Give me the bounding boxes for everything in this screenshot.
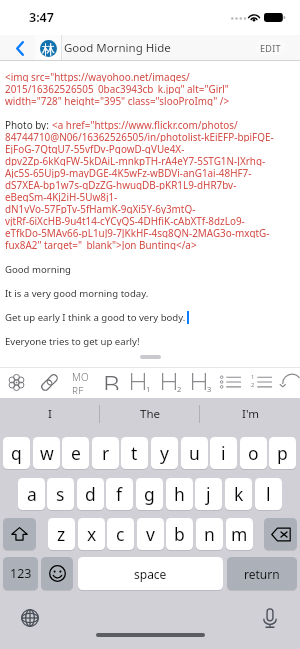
staticText: 1 bbox=[146, 384, 151, 394]
button[interactable]: Dictate bbox=[258, 606, 282, 630]
button[interactable]: k bbox=[225, 478, 252, 510]
staticText: width="728" height="395" class="slooProI… bbox=[5, 94, 230, 106]
button[interactable]: return bbox=[227, 557, 297, 590]
button[interactable]: m bbox=[226, 518, 253, 550]
button[interactable]: Back bbox=[11, 35, 29, 61]
button[interactable]: Good Morning Hide bbox=[61, 35, 251, 61]
button[interactable]: e bbox=[62, 437, 89, 469]
staticText: I bbox=[48, 406, 52, 422]
button[interactable]: z bbox=[48, 518, 75, 550]
staticText: h bbox=[174, 482, 185, 506]
staticText: x bbox=[87, 522, 97, 546]
staticText: c bbox=[116, 522, 125, 546]
button[interactable]: t bbox=[121, 437, 148, 469]
button[interactable]: i bbox=[210, 437, 237, 469]
button[interactable]: a bbox=[18, 478, 45, 510]
button[interactable]: Switch keyboard bbox=[18, 606, 42, 630]
staticText: Get up early I think a good to very body… bbox=[5, 311, 186, 324]
button[interactable]: u bbox=[181, 437, 208, 469]
staticText: Ajc5S-65Ujp9-mayDGE-4K5wFz-wBDVi-anG1ai-… bbox=[5, 166, 252, 178]
staticText: d bbox=[85, 482, 96, 506]
button[interactable]: Author avatar bbox=[35, 35, 61, 61]
staticText: i bbox=[221, 441, 226, 465]
staticText: f bbox=[116, 482, 123, 506]
button[interactable]: b bbox=[166, 518, 193, 550]
staticText: l bbox=[266, 482, 271, 506]
staticText: B bbox=[103, 366, 120, 390]
button[interactable]: v bbox=[137, 518, 164, 550]
staticText: w bbox=[40, 441, 54, 465]
button[interactable]: Text style bbox=[3, 370, 29, 394]
button[interactable]: The bbox=[100, 398, 200, 430]
staticText: u bbox=[189, 441, 200, 465]
button[interactable]: o bbox=[240, 437, 267, 469]
staticText: b bbox=[174, 522, 185, 546]
staticText: y bbox=[160, 441, 169, 465]
button[interactable]: Heading 2 bbox=[160, 370, 186, 394]
staticText: 2015/16362526505_0bac3943cb_k.jpg" alt="… bbox=[5, 82, 229, 94]
staticText: m bbox=[231, 522, 248, 546]
staticText: s bbox=[56, 482, 65, 506]
button[interactable]: c bbox=[107, 518, 134, 550]
button[interactable]: Heading 1 bbox=[129, 370, 155, 394]
button[interactable]: p bbox=[269, 437, 296, 469]
staticText: Everyone tries to get up early! bbox=[5, 335, 140, 348]
staticText: a bbox=[27, 482, 37, 506]
staticText: 84744710@N06/16362526505/in/photolist-kE… bbox=[5, 130, 274, 142]
button[interactable]: Numbered list bbox=[248, 370, 274, 394]
button[interactable]: l bbox=[255, 478, 282, 510]
staticText: Photo by: bbox=[5, 118, 52, 130]
staticText: eTfkDo-5MAv66-pL1uJ9-7JKkHF-4sg8QN-2MAG3… bbox=[5, 226, 270, 238]
button[interactable]: Bold bbox=[98, 370, 124, 394]
button[interactable]: Undo bbox=[279, 370, 300, 394]
button[interactable]: s bbox=[47, 478, 74, 510]
staticText: k bbox=[234, 482, 244, 506]
button[interactable]: j bbox=[195, 478, 222, 510]
staticText: EDIT bbox=[260, 42, 281, 54]
staticText: n bbox=[204, 522, 215, 546]
button[interactable]: w bbox=[33, 437, 60, 469]
staticText: e bbox=[71, 441, 81, 465]
button[interactable]: n bbox=[196, 518, 223, 550]
button[interactable]: q bbox=[3, 437, 30, 469]
button[interactable]: Shift bbox=[3, 518, 36, 550]
button[interactable]: 123 bbox=[3, 557, 38, 590]
staticText: 3 bbox=[207, 384, 212, 394]
staticText: q bbox=[11, 441, 22, 465]
button[interactable]: y bbox=[151, 437, 178, 469]
button[interactable]: Bulleted list bbox=[217, 370, 243, 394]
staticText: p bbox=[277, 441, 288, 465]
button[interactable]: Insert link bbox=[36, 370, 62, 394]
button[interactable]: x bbox=[78, 518, 105, 550]
staticText: fux8A2" target="_blank">Jon Bunting</a> bbox=[5, 238, 197, 250]
button[interactable]: EDIT bbox=[255, 40, 286, 55]
staticText: j bbox=[206, 482, 211, 506]
button[interactable]: I'm bbox=[200, 398, 300, 430]
button[interactable]: r bbox=[92, 437, 119, 469]
staticText: vjtRf-6iXcHB-9u4t14-cYCyQS-4DHfiK-cAbXTf… bbox=[5, 214, 245, 226]
staticText: t bbox=[131, 441, 138, 465]
button[interactable]: h bbox=[166, 478, 193, 510]
staticText: 2 bbox=[177, 384, 182, 394]
staticText: r bbox=[102, 441, 110, 465]
staticText: MO bbox=[72, 370, 89, 384]
button[interactable]: space bbox=[78, 557, 223, 590]
staticText: g bbox=[144, 482, 155, 506]
button[interactable]: g bbox=[136, 478, 163, 510]
button[interactable]: Heading 3 bbox=[190, 370, 216, 394]
button[interactable]: d bbox=[77, 478, 104, 510]
staticText: return bbox=[244, 566, 280, 582]
staticText: Good morning bbox=[5, 263, 71, 276]
staticText: 1 bbox=[251, 373, 255, 381]
staticText: 2 bbox=[251, 381, 255, 389]
staticText: I'm bbox=[242, 406, 259, 422]
button[interactable]: More bbox=[67, 370, 93, 394]
staticText: dN1vVo-57FpTv-5fHamK-9qXi5Y-6y3mtQ- bbox=[5, 202, 196, 214]
button[interactable]: I bbox=[0, 398, 100, 430]
button[interactable]: f bbox=[106, 478, 133, 510]
button[interactable]: Backspace bbox=[264, 518, 297, 550]
staticText: dpv2Zp-6kKgFW-5kDAiL-mnkpTH-rA4eY7-5STG1… bbox=[5, 154, 266, 166]
button[interactable]: Emoji bbox=[41, 557, 73, 590]
staticText: Good Morning Hide bbox=[64, 40, 171, 56]
staticText: dS7XEA-bp1w7s-qDzZG-hwugDB-pKR1L9-dHR7bv… bbox=[5, 178, 237, 190]
